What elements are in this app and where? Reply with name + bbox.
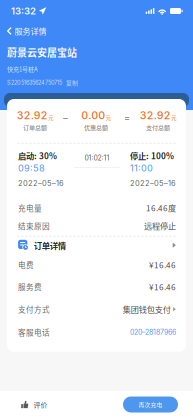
staticText: 复制	[66, 78, 78, 87]
staticText: S22051635624750715	[7, 79, 62, 86]
staticText: ¥16.46	[149, 259, 176, 271]
staticText: 09:58	[18, 163, 45, 174]
staticText: 2022–05–16	[130, 179, 176, 188]
staticText: 再次充电	[138, 400, 162, 409]
staticText: 集团钱包支付	[123, 303, 171, 315]
staticText: 客服电话	[18, 327, 50, 338]
staticText: 元	[106, 114, 111, 121]
staticText: –	[63, 112, 68, 123]
staticText: 32.92	[17, 109, 48, 122]
staticText: 0.00	[81, 109, 105, 122]
staticText: 01:02:11	[84, 154, 109, 162]
button[interactable]: 订单详情	[7, 237, 186, 254]
staticText: 远程停止	[144, 220, 176, 232]
staticText: 订单详情	[34, 239, 66, 251]
staticText: 13:32	[11, 5, 36, 17]
staticText: 评价	[34, 399, 48, 409]
staticText: 订单总额	[23, 123, 47, 132]
staticText: 服务详情	[15, 25, 47, 37]
staticText: 11:00	[130, 163, 153, 174]
staticText: 快充1号桩A	[7, 64, 38, 73]
staticText: 32.92	[140, 109, 171, 122]
staticText: 优惠总额	[84, 123, 108, 132]
button[interactable]: 支付方式	[7, 298, 186, 321]
staticText: 支付方式	[18, 304, 50, 315]
staticText: 支付总额	[146, 123, 170, 132]
staticText: =	[124, 112, 130, 123]
button[interactable]: 服务详情	[0, 22, 55, 40]
staticText: 充电量	[18, 202, 42, 213]
staticText: 蔚景云安居宝站	[7, 45, 77, 59]
staticText: 元	[171, 114, 176, 121]
staticText: 启动: 30%	[18, 150, 57, 162]
button[interactable]: 复制	[66, 78, 78, 87]
staticText: 元	[48, 114, 53, 121]
staticText: 结束原因	[18, 220, 50, 231]
staticText: 020–28187966	[130, 328, 176, 336]
staticText: 停止: 100%	[130, 150, 174, 162]
staticText: ¥16.46	[149, 281, 176, 293]
staticText: 服务费	[18, 281, 42, 292]
staticText: 电费	[18, 259, 34, 270]
button[interactable]: 评价	[0, 391, 60, 418]
staticText: 16.46度	[146, 202, 176, 214]
button[interactable]: 020–28187966	[130, 328, 176, 336]
button[interactable]: 再次充电	[123, 396, 178, 412]
staticText: 2022–05–16	[18, 179, 64, 188]
